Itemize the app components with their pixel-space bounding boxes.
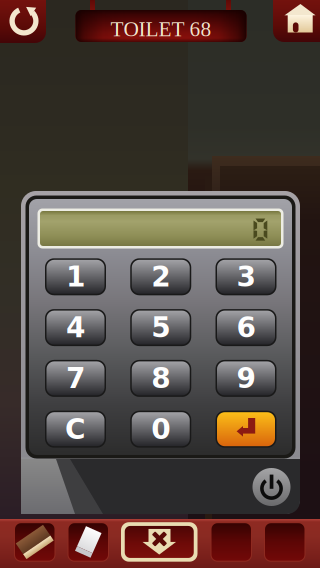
staticText: 0 <box>151 413 170 445</box>
button[interactable]: Chocolate bar <box>14 522 55 562</box>
staticText: 3 <box>236 260 255 293</box>
button[interactable]: Home <box>273 0 320 42</box>
button[interactable]: 9 <box>215 360 276 397</box>
staticText: 7 <box>66 362 85 395</box>
button[interactable]: Put away <box>121 522 197 562</box>
staticText: 6 <box>236 311 255 344</box>
staticText: 4 <box>66 311 85 344</box>
button[interactable]: 3 <box>215 258 276 295</box>
staticText: 2 <box>151 260 170 293</box>
button[interactable]: 1 <box>45 258 106 295</box>
button[interactable]: Restart <box>0 0 46 43</box>
button[interactable]: 2 <box>130 258 191 295</box>
button[interactable]: 8 <box>130 360 191 397</box>
button[interactable]: Empty slot <box>210 522 252 562</box>
staticText: 9 <box>236 362 255 395</box>
button[interactable]: 5 <box>130 309 191 346</box>
staticText: 5 <box>151 311 170 344</box>
button[interactable]: Empty slot <box>264 522 305 562</box>
button[interactable]: 6 <box>215 309 276 346</box>
staticText: 1 <box>66 260 85 293</box>
staticText: C <box>65 413 86 445</box>
button[interactable]: C <box>45 411 106 448</box>
staticText: 8 <box>151 362 170 395</box>
button[interactable]: 7 <box>45 360 106 397</box>
staticText: TOILET 68 <box>110 17 211 41</box>
button[interactable]: Paper <box>67 522 109 562</box>
button[interactable]: 4 <box>45 309 106 346</box>
button[interactable]: 0 <box>130 411 191 448</box>
button[interactable]: Power <box>252 468 290 506</box>
button[interactable]: Enter <box>215 411 276 448</box>
